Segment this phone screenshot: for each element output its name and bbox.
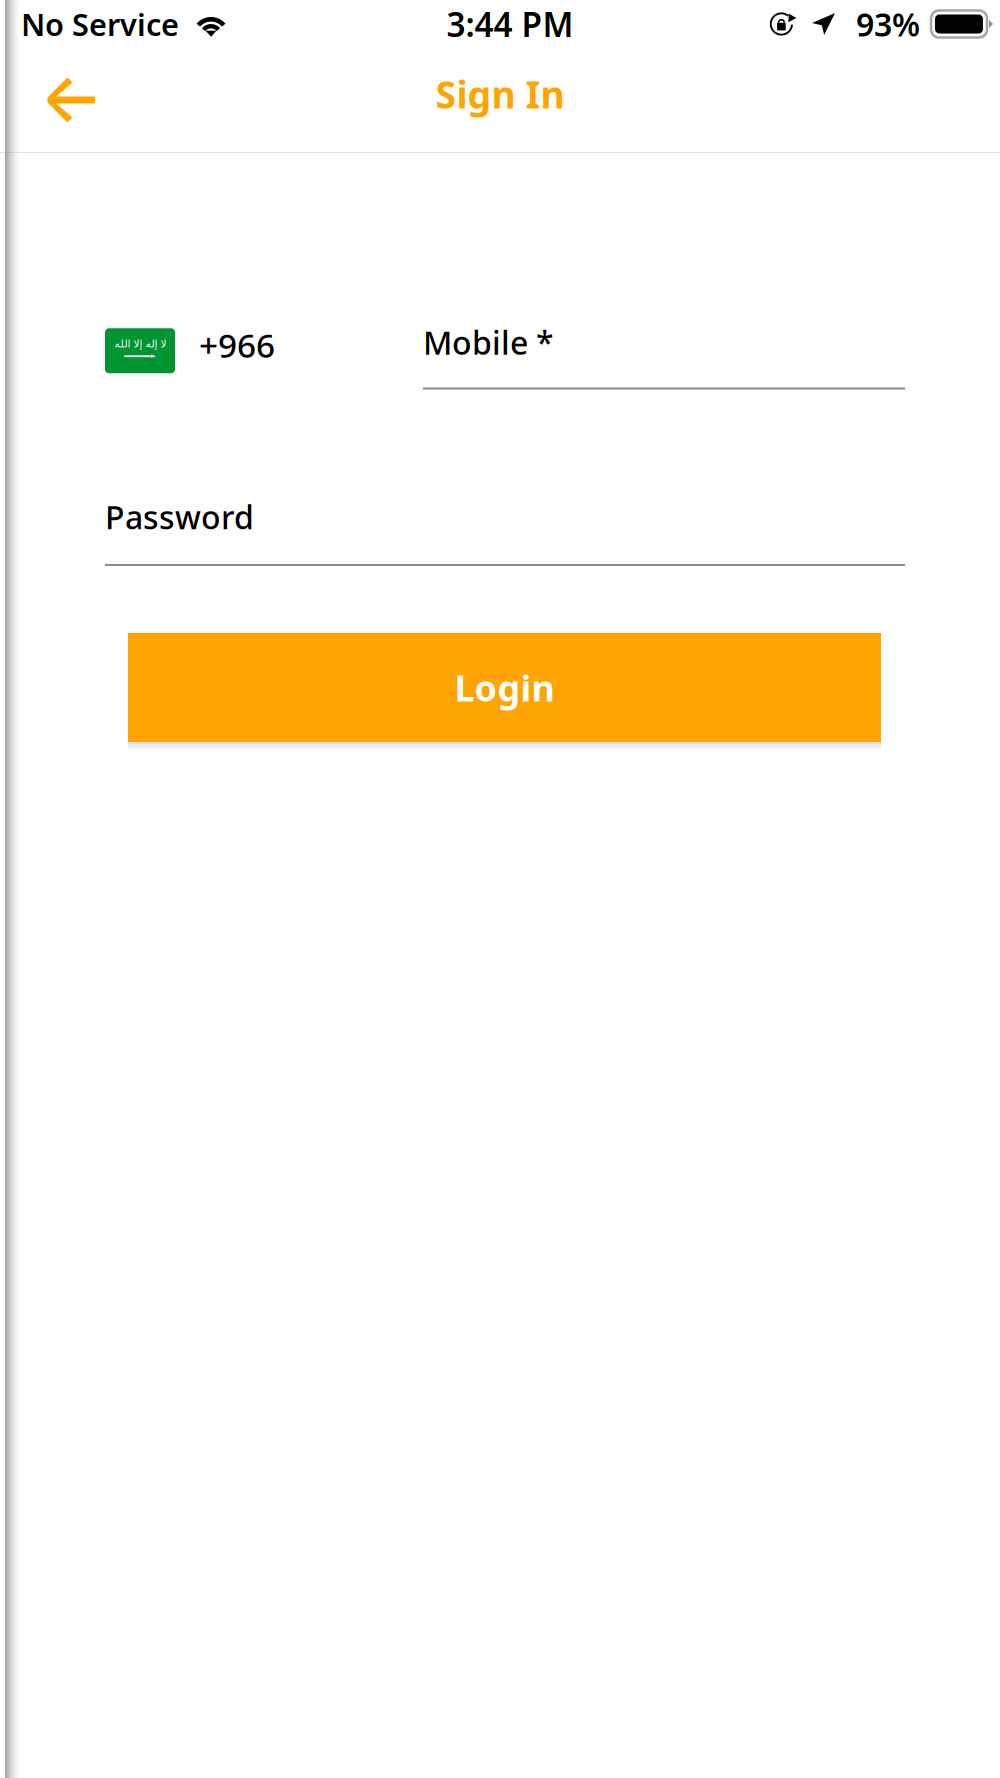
staticText: Password — [105, 495, 254, 538]
staticText: 93% — [856, 3, 920, 45]
button[interactable]: لا إله إلا الله — [105, 322, 275, 379]
staticText: Login — [454, 664, 554, 711]
staticText: لا إله إلا الله — [114, 338, 166, 350]
staticText: Sign In — [435, 69, 564, 119]
staticText: Mobile * — [423, 321, 554, 363]
button[interactable]: Login — [128, 633, 881, 742]
staticText: +966 — [199, 323, 275, 367]
staticText: No Service — [21, 4, 179, 44]
staticText: 3:44 PM — [446, 2, 573, 46]
button[interactable]: Back — [0, 48, 121, 152]
